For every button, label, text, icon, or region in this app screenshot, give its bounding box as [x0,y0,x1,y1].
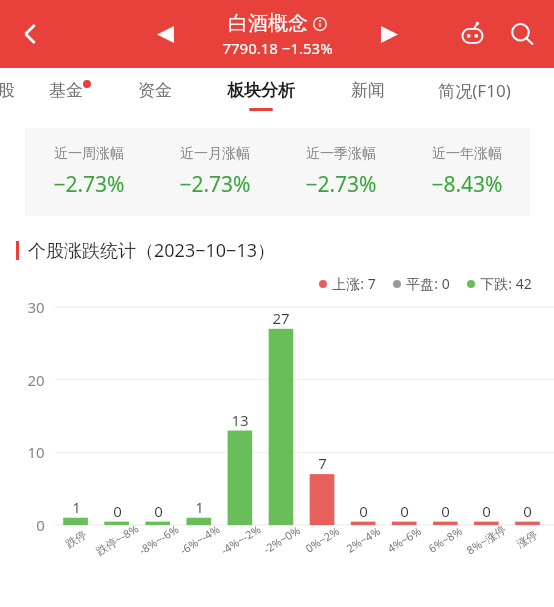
staticText: −8.43% [431,170,503,199]
staticText: 1 [195,497,204,517]
button[interactable]: 下跌: 42 [467,274,532,293]
button[interactable]: 平盘: 0 [393,274,450,293]
staticText: 基金 [49,80,83,101]
staticText: 新闻 [351,80,385,101]
button[interactable]: Previous sector [145,14,185,54]
staticText: 个股涨跌统计（2023−10−13） [28,238,275,263]
button[interactable]: Back [6,10,54,58]
button[interactable]: Search [500,12,544,56]
button[interactable]: 资金 [112,68,197,123]
button[interactable]: AI assistant [450,12,494,56]
button[interactable]: 股 [0,68,27,123]
staticText: -6%~-4% [176,521,222,558]
staticText: 0 [523,501,532,521]
staticText: −2.73% [179,170,251,199]
staticText: 4%~6% [384,523,424,556]
button[interactable]: 上涨: 7 [319,274,376,293]
staticText: 7 [318,453,327,473]
staticText: 6%~8% [425,523,465,556]
staticText: 近一周涨幅 [54,145,124,163]
staticText: −2.73% [53,170,125,199]
staticText: −2.73% [305,170,377,199]
staticText: 0 [154,501,163,521]
staticText: 近一月涨幅 [180,145,250,163]
button[interactable]: 近一年涨幅 [404,145,530,199]
staticText: 近一季涨幅 [306,145,376,163]
staticText: 1 [72,497,81,517]
staticText: 上涨: 7 [332,274,376,293]
button[interactable]: 近一季涨幅 [278,145,404,199]
staticText: 0 [400,501,409,521]
staticText: 7790.18 −1.53% [222,38,333,58]
staticText: 简况(F10) [438,79,511,102]
staticText: 20 [27,370,45,390]
staticText: -8%~-6% [135,521,181,558]
staticText: 0 [359,501,368,521]
staticText: 30 [27,297,45,317]
button[interactable]: 白酒概念 [222,11,333,58]
staticText: 资金 [138,80,172,101]
staticText: 0%~2% [302,523,342,556]
staticText: 涨停 [514,527,540,551]
button[interactable]: 近一月涨幅 [152,145,278,199]
staticText: 2%~4% [343,523,383,556]
staticText: 0 [441,501,450,521]
staticText: 8%~涨停 [463,521,509,557]
staticText: -4%~-2% [217,521,263,558]
staticText: 10 [27,442,45,462]
button[interactable]: 近一周涨幅 [25,145,152,199]
staticText: 平盘: 0 [406,274,450,293]
button[interactable]: 基金 [27,68,112,123]
button[interactable]: 板块分析 [197,68,325,123]
staticText: 板块分析 [227,80,295,101]
staticText: -2%~0% [260,522,303,557]
staticText: 股 [0,80,15,101]
staticText: 跌停 [63,527,89,551]
staticText: 跌停~-8% [93,520,141,559]
staticText: 0 [482,501,491,521]
staticText: 下跌: 42 [480,274,532,293]
button[interactable]: 新闻 [325,68,410,123]
staticText: 0 [36,515,45,535]
button[interactable]: 简况(F10) [410,68,538,123]
staticText: 白酒概念 [228,11,308,36]
staticText: 0 [113,501,122,521]
button[interactable]: Next sector [369,14,409,54]
staticText: 13 [231,410,249,430]
staticText: 27 [272,308,290,328]
staticText: 近一年涨幅 [432,145,502,163]
